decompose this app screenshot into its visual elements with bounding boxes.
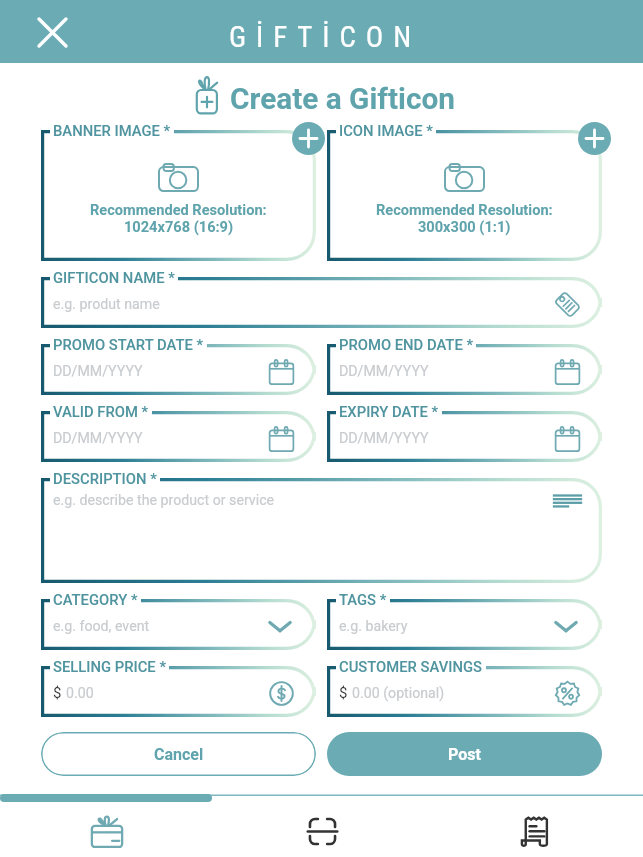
staticText: 0.00 (optional) <box>352 685 554 702</box>
staticText: DESCRIPTION * <box>53 470 157 487</box>
button[interactable]: Close <box>29 9 75 55</box>
staticText: BANNER IMAGE * <box>53 122 171 139</box>
staticText: $ <box>53 684 62 702</box>
staticText: Recommended Resolution: <box>376 201 553 218</box>
button[interactable]: Add image <box>578 122 611 155</box>
staticText: CATEGORY * <box>53 591 138 608</box>
staticText: TAGS * <box>339 591 387 608</box>
staticText: GIFTICON NAME * <box>53 269 175 286</box>
staticText: GİFTİCON <box>229 20 421 54</box>
button[interactable]: Cancel <box>41 732 316 776</box>
staticText: ICON IMAGE * <box>339 122 433 139</box>
staticText: VALID FROM * <box>53 403 149 420</box>
staticText: e.g. produt name <box>53 296 554 313</box>
button[interactable]: Scan <box>294 806 350 857</box>
staticText: Recommended Resolution: <box>90 201 267 218</box>
button[interactable]: Gift cards <box>79 806 135 857</box>
staticText: 1024x768 (16:9) <box>124 218 234 235</box>
button[interactable]: Add image <box>292 122 325 155</box>
staticText: DD/MM/YYYY <box>53 430 268 447</box>
staticText: e.g. bakery <box>339 618 551 635</box>
staticText: e.g. describe the product or service <box>53 492 275 509</box>
staticText: DD/MM/YYYY <box>53 363 268 380</box>
staticText: Create a Gifticon <box>230 81 455 116</box>
staticText: EXPIRY DATE * <box>339 403 439 420</box>
staticText: DD/MM/YYYY <box>339 430 554 447</box>
staticText: 300x300 (1:1) <box>418 218 511 235</box>
staticText: PROMO START DATE * <box>53 336 204 353</box>
staticText: Cancel <box>154 745 204 764</box>
staticText: PROMO END DATE * <box>339 336 473 353</box>
button[interactable]: Post <box>327 732 602 776</box>
staticText: SELLING PRICE * <box>53 658 166 675</box>
staticText: e.g. food, event <box>53 618 265 635</box>
staticText: DD/MM/YYYY <box>339 363 554 380</box>
button[interactable]: Receipts <box>508 806 564 857</box>
staticText: Post <box>448 745 481 764</box>
staticText: $ <box>339 684 348 702</box>
staticText: CUSTOMER SAVINGS <box>339 658 483 675</box>
staticText: 0.00 <box>66 685 268 702</box>
